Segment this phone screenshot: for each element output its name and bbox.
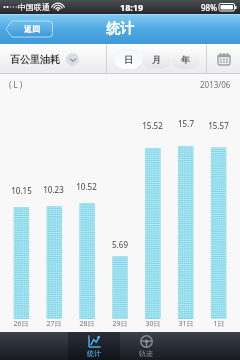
staticText: 轨迹 bbox=[139, 349, 153, 358]
staticText: 31日 bbox=[178, 319, 194, 329]
staticText: ( L ) bbox=[9, 79, 23, 90]
staticText: 统计 bbox=[87, 349, 101, 358]
staticText: 10.52 bbox=[76, 181, 97, 192]
button[interactable]: 百公里油耗 bbox=[0, 44, 106, 74]
staticText: 28日 bbox=[79, 319, 95, 329]
staticText: 2013/06 bbox=[200, 79, 231, 90]
staticText: 29日 bbox=[112, 319, 128, 329]
button[interactable]: 日 bbox=[114, 49, 142, 69]
button[interactable]: 月 bbox=[142, 49, 171, 69]
staticText: 98% bbox=[201, 2, 217, 13]
staticText: 返回 bbox=[24, 24, 40, 34]
staticText: 1日 bbox=[213, 319, 225, 329]
staticText: 统计 bbox=[106, 20, 134, 38]
button[interactable]: 返回 bbox=[5, 20, 53, 38]
button[interactable]: 年 bbox=[171, 49, 200, 69]
staticText: 26日 bbox=[13, 319, 29, 329]
button[interactable]: 轨迹 bbox=[120, 332, 172, 360]
staticText: 27日 bbox=[46, 319, 62, 329]
staticText: 5.69 bbox=[112, 239, 128, 250]
staticText: 年 bbox=[181, 54, 190, 65]
staticText: 月 bbox=[152, 54, 161, 65]
button[interactable]: 统计 bbox=[68, 332, 120, 360]
staticText: 15.57 bbox=[208, 120, 229, 131]
staticText: 百公里油耗 bbox=[10, 53, 60, 66]
staticText: 10.15 bbox=[11, 185, 32, 196]
button[interactable]: Calendar bbox=[207, 44, 240, 74]
staticText: 15.52 bbox=[142, 120, 163, 131]
staticText: 日 bbox=[124, 54, 133, 65]
staticText: 30日 bbox=[145, 319, 161, 329]
staticText: 中国联通 bbox=[18, 2, 50, 12]
staticText: 15.7 bbox=[178, 118, 194, 129]
staticText: 10.23 bbox=[43, 184, 64, 195]
staticText: 18:19 bbox=[120, 1, 144, 13]
